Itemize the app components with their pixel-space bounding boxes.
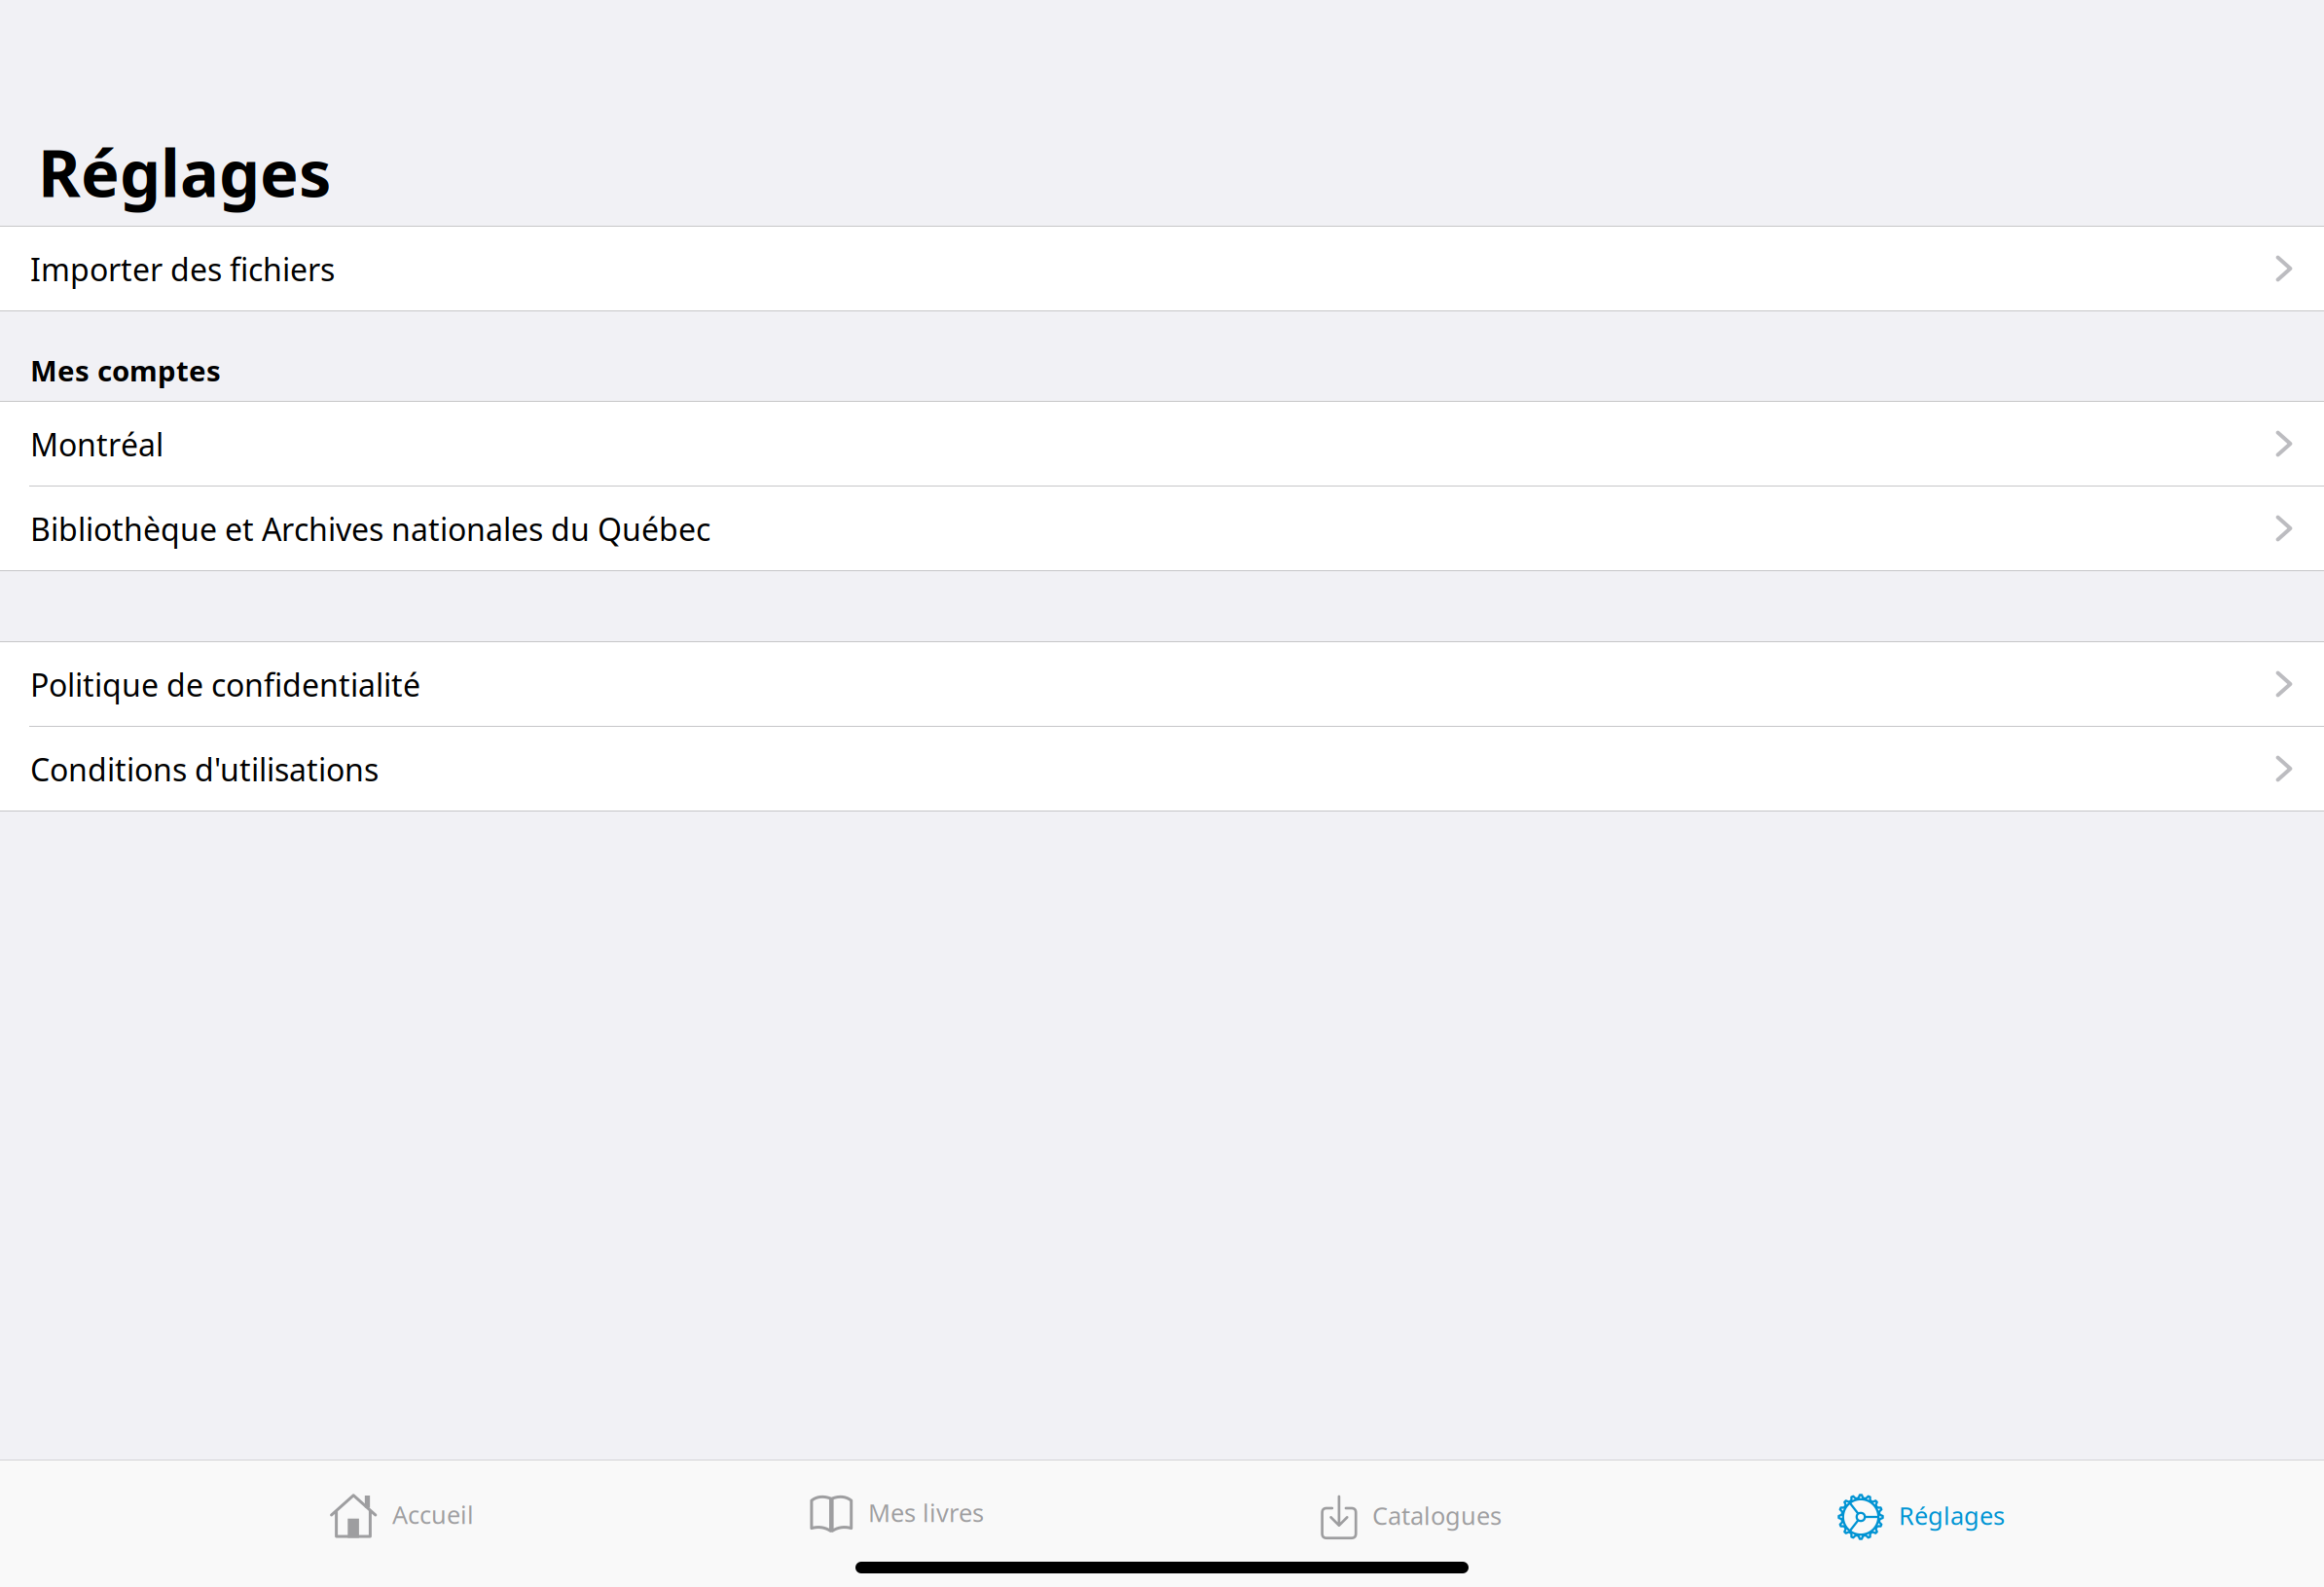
button[interactable]: Mes livres — [810, 1461, 984, 1556]
button[interactable]: Politique de confidentialité — [0, 642, 2324, 726]
button[interactable]: Bibliothèque et Archives nationales du Q… — [0, 487, 2324, 570]
staticText: Importer des fichiers — [30, 248, 335, 290]
staticText: Réglages — [1899, 1499, 2005, 1532]
button[interactable]: Accueil — [330, 1461, 474, 1556]
button[interactable]: Réglages — [1837, 1461, 2005, 1556]
staticText: Catalogues — [1372, 1499, 1502, 1532]
button[interactable]: Montréal — [0, 402, 2324, 486]
staticText: Mes comptes — [30, 351, 221, 389]
button[interactable]: Conditions d'utilisations — [0, 727, 2324, 811]
button[interactable]: Catalogues — [1320, 1461, 1502, 1556]
staticText: Montréal — [30, 424, 163, 465]
staticText: Conditions d'utilisations — [30, 749, 379, 790]
staticText: Politique de confidentialité — [30, 664, 420, 705]
staticText: Bibliothèque et Archives nationales du Q… — [30, 508, 710, 550]
staticText: Réglages — [38, 129, 331, 215]
button[interactable]: Importer des fichiers — [0, 227, 2324, 310]
staticText: Accueil — [392, 1498, 474, 1531]
staticText: Mes livres — [868, 1496, 984, 1529]
